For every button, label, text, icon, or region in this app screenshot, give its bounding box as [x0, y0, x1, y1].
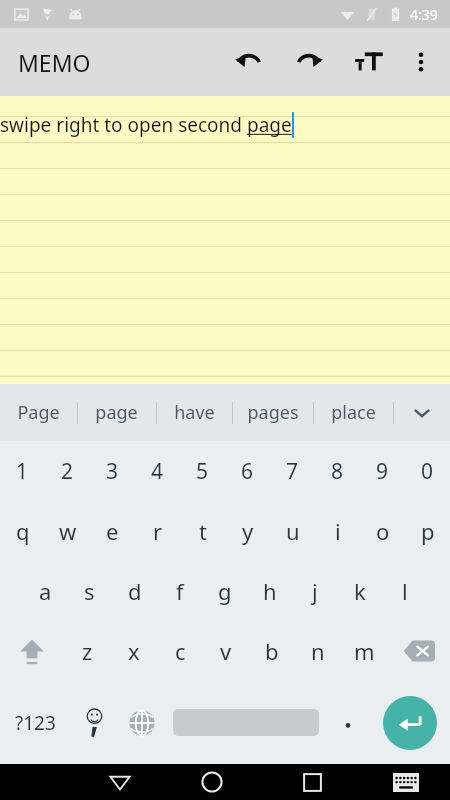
button[interactable]: Redo	[286, 39, 332, 85]
button[interactable]: e	[90, 501, 135, 561]
button[interactable]: Home	[162, 764, 262, 800]
staticText: p	[421, 516, 435, 546]
button[interactable]: 0	[405, 441, 450, 501]
staticText: a	[39, 576, 52, 606]
button[interactable]: u	[270, 501, 315, 561]
button[interactable]: Recent apps	[262, 764, 362, 800]
button[interactable]: place	[313, 384, 393, 441]
button[interactable]: p	[405, 501, 450, 561]
staticText: 8	[331, 457, 344, 486]
button[interactable]: w	[45, 501, 90, 561]
staticText: b	[265, 636, 279, 666]
button[interactable]: Change language	[118, 681, 166, 764]
button[interactable]: Expand suggestions	[393, 384, 450, 441]
button[interactable]: swipe right to open second	[0, 96, 450, 384]
button[interactable]: z	[64, 621, 111, 681]
button[interactable]: 3	[90, 441, 135, 501]
button[interactable]: 4	[135, 441, 180, 501]
button[interactable]: 5	[180, 441, 225, 501]
button[interactable]: 6	[225, 441, 270, 501]
button[interactable]: o	[360, 501, 405, 561]
staticText: 4:39	[410, 5, 438, 24]
button[interactable]: More options	[398, 39, 444, 85]
staticText: w	[59, 516, 77, 546]
staticText: 3	[106, 457, 119, 486]
staticText: 6	[241, 457, 254, 486]
button[interactable]: a	[23, 561, 67, 621]
button[interactable]: Emoji and comma	[70, 681, 118, 764]
staticText: MEMO	[18, 47, 91, 78]
staticText: u	[286, 516, 300, 546]
button[interactable]: i	[315, 501, 360, 561]
button[interactable]: Backspace	[387, 621, 450, 681]
staticText: 0	[421, 457, 434, 486]
button[interactable]: n	[295, 621, 341, 681]
button[interactable]: j	[292, 561, 337, 621]
staticText: page	[247, 112, 292, 138]
staticText: swipe right to open second	[0, 112, 247, 138]
staticText: h	[263, 576, 277, 606]
button[interactable]: h	[247, 561, 292, 621]
staticText: 1	[16, 457, 29, 486]
staticText: place	[331, 400, 376, 425]
button[interactable]: Page	[0, 384, 77, 441]
button[interactable]: 7	[270, 441, 315, 501]
staticText: f	[176, 576, 184, 606]
staticText: 4	[151, 457, 164, 486]
staticText: d	[128, 576, 142, 606]
staticText: x	[128, 636, 140, 666]
staticText: pages	[247, 400, 299, 425]
staticText: o	[376, 516, 390, 546]
button[interactable]: 1	[0, 441, 45, 501]
button[interactable]: l	[382, 561, 427, 621]
button[interactable]: page	[77, 384, 156, 441]
staticText: c	[175, 636, 186, 666]
button[interactable]: t	[180, 501, 225, 561]
staticText: z	[82, 636, 93, 666]
button[interactable]: Undo	[226, 39, 272, 85]
button[interactable]: x	[111, 621, 157, 681]
button[interactable]	[325, 681, 370, 764]
button[interactable]: Text size	[346, 39, 392, 85]
staticText: e	[106, 516, 119, 546]
button[interactable]: 2	[45, 441, 90, 501]
staticText: 2	[61, 457, 74, 486]
button[interactable]: 9	[360, 441, 405, 501]
button[interactable]: Space	[166, 681, 325, 764]
staticText: m	[354, 636, 375, 666]
staticText: 7	[286, 457, 299, 486]
staticText: ?123	[15, 710, 56, 736]
staticText: q	[16, 516, 30, 546]
button[interactable]: y	[225, 501, 270, 561]
button[interactable]: Enter	[370, 681, 450, 764]
button[interactable]: Shift	[0, 621, 64, 681]
button[interactable]: q	[0, 501, 45, 561]
staticText: n	[311, 636, 325, 666]
staticText: Page	[17, 400, 60, 425]
staticText: r	[153, 516, 163, 546]
button[interactable]: g	[202, 561, 247, 621]
button[interactable]: have	[156, 384, 232, 441]
button[interactable]: c	[157, 621, 203, 681]
staticText: l	[402, 576, 408, 606]
button[interactable]: pages	[232, 384, 313, 441]
button[interactable]: Hide keyboard	[362, 764, 450, 800]
button[interactable]: k	[337, 561, 382, 621]
button[interactable]: Back	[77, 764, 162, 800]
button[interactable]: d	[112, 561, 157, 621]
button[interactable]: r	[135, 501, 180, 561]
button[interactable]: f	[157, 561, 202, 621]
button[interactable]: ?123	[0, 681, 70, 764]
button[interactable]: b	[249, 621, 295, 681]
staticText: g	[218, 576, 232, 606]
staticText: j	[312, 576, 318, 606]
button[interactable]: v	[203, 621, 249, 681]
staticText: have	[174, 400, 215, 425]
staticText: 9	[376, 457, 389, 486]
staticText: y	[242, 516, 254, 546]
button[interactable]: 8	[315, 441, 360, 501]
button[interactable]: s	[67, 561, 112, 621]
button[interactable]: m	[341, 621, 387, 681]
staticText: i	[335, 516, 341, 546]
staticText: 5	[196, 457, 209, 486]
